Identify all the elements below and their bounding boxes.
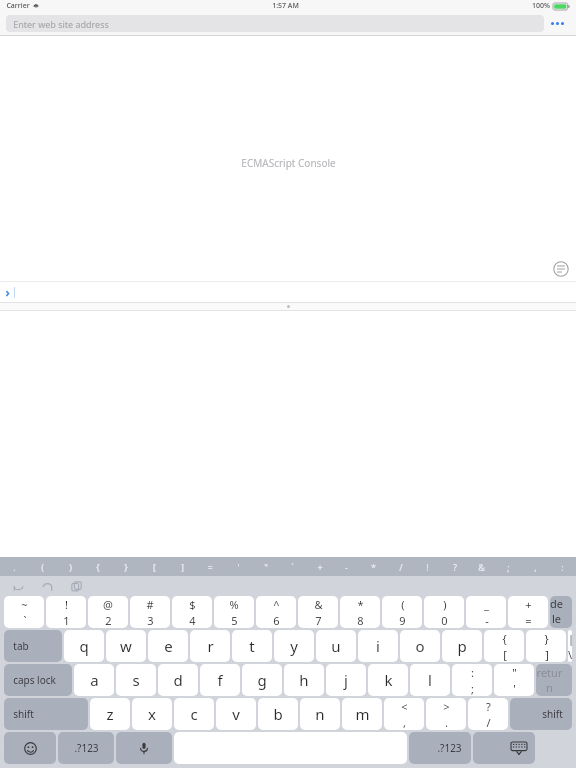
staticText: a [90, 670, 99, 690]
button[interactable] [116, 732, 172, 764]
button[interactable]: + [306, 557, 333, 576]
button[interactable]: , [522, 557, 549, 576]
button[interactable]: * [340, 596, 380, 628]
staticText: 9 [399, 613, 406, 628]
button[interactable]: * [360, 557, 387, 576]
button[interactable]: < [384, 698, 424, 730]
button[interactable]: .?123 [409, 732, 471, 764]
staticText: ; [471, 681, 474, 696]
button[interactable]: More options [544, 12, 570, 35]
button[interactable]: o [400, 630, 440, 662]
button[interactable]: Reader view [553, 261, 569, 277]
button[interactable]: e [148, 630, 188, 662]
button[interactable]: ? [468, 698, 508, 730]
button[interactable]: b [258, 698, 298, 730]
staticText: return [536, 665, 563, 695]
button[interactable]: a [74, 664, 114, 696]
button[interactable]: } [112, 557, 140, 576]
staticText: g [257, 670, 267, 690]
button[interactable]: z [90, 698, 130, 730]
button[interactable]: w [106, 630, 146, 662]
button[interactable]: shift [510, 698, 572, 730]
button[interactable]: ~ [4, 596, 44, 628]
button[interactable]: f [200, 664, 240, 696]
button[interactable]: Paste [70, 580, 83, 593]
button[interactable]: g [242, 664, 282, 696]
button[interactable]: u [316, 630, 356, 662]
button[interactable]: ] [168, 557, 196, 576]
button[interactable]: q [64, 630, 104, 662]
button[interactable]: _ [466, 596, 506, 628]
button[interactable]: › [0, 282, 576, 302]
button[interactable]: l [410, 664, 450, 696]
staticText: \ [568, 647, 572, 662]
button[interactable]: ! [414, 557, 441, 576]
button[interactable]: c [174, 698, 214, 730]
button[interactable]: tab [4, 630, 62, 662]
staticText: [ [153, 561, 156, 573]
button[interactable]: shift [4, 698, 88, 730]
button[interactable]: { [84, 557, 112, 576]
button[interactable]: delete [550, 596, 572, 628]
button[interactable]: ? [441, 557, 468, 576]
button[interactable]: " [252, 557, 279, 576]
button[interactable]: > [426, 698, 466, 730]
button[interactable]: ) [56, 557, 84, 576]
staticText: .?123 [74, 741, 99, 755]
button[interactable]: i [358, 630, 398, 662]
button[interactable]: & [298, 596, 338, 628]
button[interactable]: / [387, 557, 414, 576]
button[interactable]: t [232, 630, 272, 662]
button[interactable]: return [536, 664, 572, 696]
staticText: x [148, 704, 156, 724]
button[interactable]: caps lock [4, 664, 72, 696]
button[interactable]: & [468, 557, 495, 576]
button[interactable]: d [158, 664, 198, 696]
button[interactable]: k [368, 664, 408, 696]
button[interactable]: % [214, 596, 254, 628]
button[interactable]: : [452, 664, 492, 696]
button[interactable]: ( [382, 596, 422, 628]
button[interactable]: # [130, 596, 170, 628]
button[interactable]: n [300, 698, 340, 730]
button[interactable]: $ [172, 596, 212, 628]
button[interactable]: s [116, 664, 156, 696]
button[interactable]: m [342, 698, 382, 730]
button[interactable]: { [484, 630, 524, 662]
button[interactable]: v [216, 698, 256, 730]
button[interactable]: ; [495, 557, 522, 576]
button[interactable]: Enter web site address [6, 15, 544, 32]
staticText: ) [69, 561, 72, 573]
button[interactable]: ( [28, 557, 56, 576]
button[interactable] [4, 732, 56, 764]
button[interactable]: + [508, 596, 548, 628]
button[interactable]: ' [224, 557, 252, 576]
button[interactable]: Redo [41, 580, 54, 593]
button[interactable]: | [568, 630, 572, 662]
button[interactable] [473, 732, 535, 764]
button[interactable]: ) [424, 596, 464, 628]
button[interactable]: " [494, 664, 534, 696]
staticText: d [173, 670, 183, 690]
staticText: n [315, 704, 325, 724]
button[interactable]: = [196, 557, 224, 576]
button[interactable]: } [526, 630, 566, 662]
button[interactable]: j [326, 664, 366, 696]
button[interactable]: r [190, 630, 230, 662]
button[interactable]: - [333, 557, 360, 576]
button[interactable]: Undo [12, 580, 25, 593]
button[interactable]: : [549, 557, 576, 576]
button[interactable]: ! [46, 596, 86, 628]
staticText: ' [237, 561, 240, 573]
button[interactable]: @ [88, 596, 128, 628]
button[interactable]: ^ [256, 596, 296, 628]
button[interactable]: y [274, 630, 314, 662]
button[interactable]: p [442, 630, 482, 662]
button[interactable]: x [132, 698, 172, 730]
button[interactable]: [ [140, 557, 168, 576]
button[interactable]: h [284, 664, 324, 696]
button[interactable]: .?123 [58, 732, 114, 764]
